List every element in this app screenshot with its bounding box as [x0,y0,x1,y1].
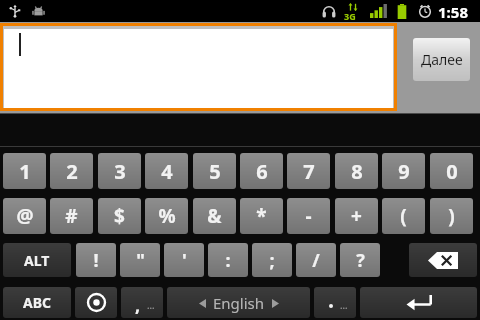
staticText: - [305,203,312,229]
button[interactable]: ! [76,243,116,277]
button[interactable]: 8 [335,153,378,189]
button[interactable] [0,23,397,111]
staticText: ' [182,248,187,273]
button[interactable]: - [287,198,330,234]
button[interactable]: 1 [3,153,46,189]
staticText: 8 [351,158,363,185]
staticText: * [256,203,267,229]
button[interactable]: 7 [287,153,330,189]
staticText: English [213,293,265,313]
staticText: 0 [446,158,458,185]
staticText: 7 [303,158,315,185]
button[interactable]: $ [98,198,141,234]
button[interactable]: ( [382,198,425,234]
button[interactable]: 5 [193,153,236,189]
staticText: & [207,203,222,229]
button[interactable]: ; [252,243,292,277]
button[interactable]: Space [167,287,310,318]
staticText: ? [356,248,365,273]
staticText: $ [114,203,125,229]
button[interactable]: + [335,198,378,234]
staticText: , [135,293,141,318]
staticText: 1 [19,158,31,185]
button[interactable]: * [240,198,283,234]
button[interactable]: Comma [121,287,163,318]
staticText: 4 [161,158,173,185]
button[interactable]: 9 [382,153,425,189]
staticText: # [65,203,78,229]
staticText: 6 [256,158,268,185]
staticText: Далее [421,50,463,69]
button[interactable]: 4 [145,153,188,189]
button[interactable]: ABC [3,287,71,318]
button[interactable]: @ [3,198,46,234]
staticText: ! [93,248,99,273]
button[interactable]: 6 [240,153,283,189]
staticText: 1:58 [438,2,468,22]
staticText: ; [269,248,275,273]
staticText: " [136,248,145,273]
button[interactable]: ALT [3,243,71,277]
button[interactable]: Backspace [409,243,477,277]
button[interactable]: ' [164,243,204,277]
staticText: 3 [114,158,126,185]
button[interactable]: & [193,198,236,234]
button[interactable]: Period [314,287,356,318]
staticText: 9 [398,158,410,185]
staticText: ABC [23,293,51,312]
button[interactable]: ) [430,198,473,234]
button[interactable]: : [208,243,248,277]
staticText: @ [16,203,34,229]
staticText: ... [340,299,348,311]
button[interactable]: Enter [360,287,477,318]
staticText: 2 [66,158,78,185]
button[interactable]: 2 [50,153,93,189]
button[interactable]: Input method settings [75,287,117,318]
button[interactable]: / [296,243,336,277]
button[interactable]: ? [340,243,380,277]
staticText: ... [147,299,155,311]
staticText: ( [400,203,407,229]
staticText: + [351,203,362,229]
button[interactable]: Далее [413,38,470,81]
staticText: ALT [24,251,50,270]
staticText: : [225,248,231,273]
button[interactable]: " [120,243,160,277]
staticText: 3G [344,10,356,22]
button[interactable]: 3 [98,153,141,189]
staticText: ) [448,203,455,229]
staticText: % [158,203,176,229]
staticText: / [312,248,320,273]
button[interactable]: % [145,198,188,234]
button[interactable]: 0 [430,153,473,189]
button[interactable]: # [50,198,93,234]
staticText: 5 [209,158,221,185]
